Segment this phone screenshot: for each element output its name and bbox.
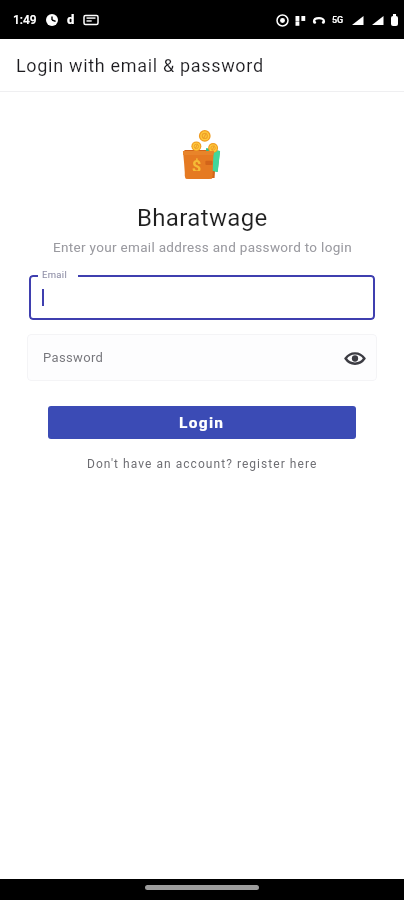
staticText: Login bbox=[179, 414, 225, 432]
staticText: $ bbox=[192, 157, 202, 171]
staticText: Email bbox=[42, 269, 68, 280]
staticText: 1:49 bbox=[13, 13, 37, 27]
button[interactable]: Show password bbox=[340, 343, 370, 373]
staticText: Enter your email address and password to… bbox=[53, 239, 352, 255]
staticText: Login with email & password bbox=[16, 55, 264, 76]
button[interactable] bbox=[29, 275, 375, 320]
button[interactable]: Password bbox=[27, 334, 377, 381]
staticText: Password bbox=[43, 350, 104, 365]
staticText: Bharatwage bbox=[137, 204, 268, 232]
button[interactable]: Don't have an account? register here bbox=[81, 455, 324, 473]
button[interactable]: Login bbox=[48, 406, 356, 439]
staticText: d bbox=[67, 12, 75, 27]
staticText: 5G bbox=[332, 15, 344, 26]
